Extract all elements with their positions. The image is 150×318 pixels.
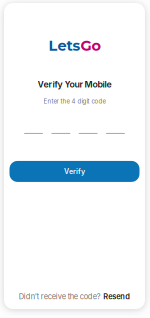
button[interactable]: Code digit <box>106 129 125 138</box>
staticText: Lets <box>48 37 80 54</box>
staticText: Resend <box>103 292 130 301</box>
button[interactable]: Code digit <box>79 129 98 138</box>
staticText: Enter the 4 digit code <box>43 98 105 105</box>
staticText: Verify <box>64 167 85 176</box>
staticText: Go <box>80 37 100 54</box>
staticText: Didn't receive the code? <box>19 292 101 301</box>
button[interactable]: Verify <box>9 161 139 182</box>
button[interactable]: Code digit <box>51 129 70 138</box>
button[interactable]: Code digit <box>24 129 43 138</box>
staticText: Verify Your Mobile <box>37 79 111 90</box>
button[interactable]: Resend <box>103 292 130 301</box>
